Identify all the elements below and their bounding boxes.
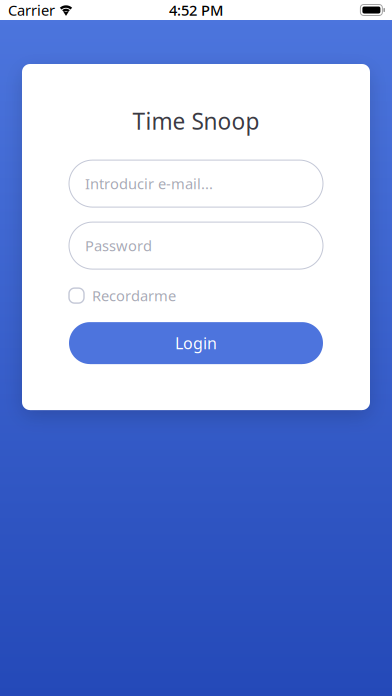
staticText: Recordarme	[92, 286, 176, 305]
button[interactable]: Introducir e-mail...	[69, 160, 323, 207]
staticText: Time Snoop	[132, 106, 259, 136]
staticText: 4:52 PM	[169, 0, 223, 20]
staticText: Carrier	[8, 0, 55, 20]
staticText: Login	[175, 332, 217, 354]
button[interactable]: Login	[69, 322, 323, 364]
button[interactable]: Password	[69, 222, 323, 269]
staticText: Introducir e-mail...	[85, 174, 213, 193]
button[interactable]: Recordarme	[69, 286, 323, 305]
staticText: Password	[85, 236, 152, 255]
